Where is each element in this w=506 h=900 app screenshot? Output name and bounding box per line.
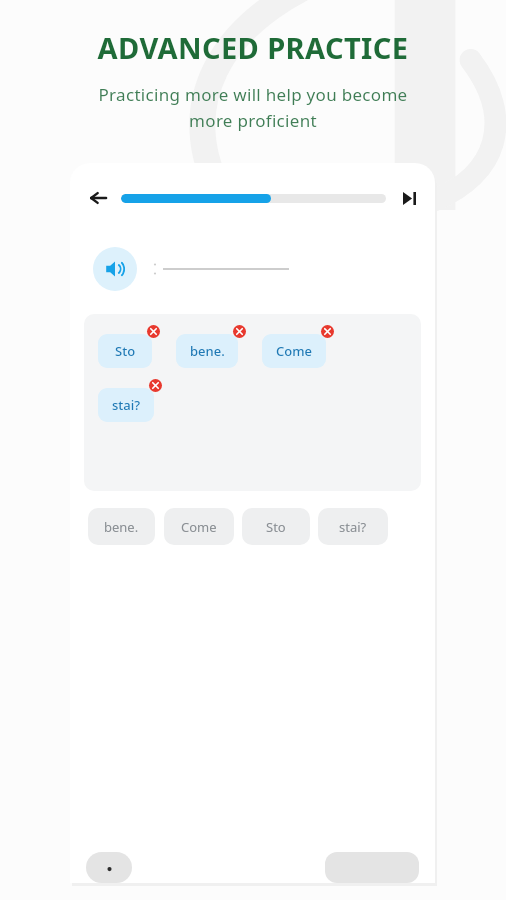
button[interactable]: Sto	[242, 508, 310, 545]
button[interactable]: Sto	[98, 334, 152, 368]
button[interactable]: Remove Come	[321, 325, 334, 338]
button[interactable]: Hint	[86, 852, 132, 883]
button[interactable]: bene.	[176, 334, 238, 368]
button[interactable]: Check	[325, 852, 419, 883]
button[interactable]: stai?	[318, 508, 388, 545]
button[interactable]: Play audio	[93, 247, 137, 291]
staticText: Sto	[115, 342, 136, 360]
button[interactable]: Remove stai?	[149, 379, 162, 392]
staticText: bene.	[104, 518, 139, 536]
staticText: stai?	[112, 396, 141, 414]
button[interactable]: bene.	[88, 508, 155, 545]
button[interactable]: Remove bene.	[233, 325, 246, 338]
staticText: bene.	[190, 342, 225, 360]
staticText: stai?	[339, 518, 367, 536]
staticText: Sto	[266, 518, 286, 536]
button[interactable]: stai?	[98, 388, 154, 422]
staticText: Practicing more will help you become mor…	[24, 83, 482, 132]
button[interactable]: Come	[164, 508, 234, 545]
button[interactable]: Back	[83, 183, 113, 213]
staticText: Come	[181, 518, 217, 536]
staticText: Come	[276, 342, 312, 360]
button[interactable]: Skip	[396, 185, 422, 211]
staticText: ADVANCED PRACTICE	[0, 28, 506, 67]
button[interactable]: Come	[262, 334, 326, 368]
button[interactable]: Remove Sto	[147, 325, 160, 338]
